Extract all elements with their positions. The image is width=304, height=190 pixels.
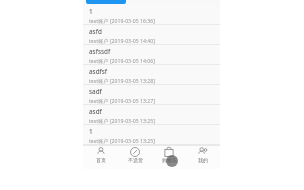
staticText: asdfsf	[89, 67, 108, 76]
staticText: sadf	[89, 87, 102, 96]
button[interactable]: New messages	[86, 0, 126, 4]
staticText: test账户 [2019-03-05 14:40]	[89, 37, 155, 44]
staticText: 不选货	[128, 157, 143, 163]
button[interactable]: sadf	[83, 85, 220, 104]
staticText: 购物车	[162, 157, 177, 163]
staticText: 首页	[96, 157, 106, 163]
other: Home	[96, 147, 106, 157]
staticText: 1	[89, 7, 93, 16]
button[interactable]: Home	[83, 145, 118, 165]
staticText: test账户 [2019-03-05 13:25]	[89, 137, 155, 144]
staticText: 我的	[198, 157, 208, 163]
button[interactable]: 1	[83, 5, 220, 24]
button[interactable]: 1	[83, 125, 220, 144]
staticText: 1	[89, 127, 93, 136]
other: Cart	[164, 147, 174, 157]
staticText: test账户 [2019-03-05 14:06]	[89, 57, 155, 64]
button[interactable]: Discover	[118, 145, 152, 165]
button[interactable]: asfd	[83, 25, 220, 44]
button[interactable]: asfssdf	[83, 45, 220, 64]
staticText: test账户 [2019-03-05 16:36]	[89, 17, 155, 24]
staticText: asfd	[89, 27, 102, 36]
button[interactable]: Cart	[152, 145, 186, 165]
staticText: asdf	[89, 107, 102, 116]
staticText: test账户 [2019-03-05 13:28]	[89, 77, 155, 84]
button[interactable]: Mine	[186, 145, 220, 165]
other: Mine	[198, 147, 208, 157]
button[interactable]: asdf	[83, 105, 220, 124]
staticText: test账户 [2019-03-05 13:27]	[89, 97, 155, 104]
staticText: test账户 [2019-03-05 13:25]	[89, 117, 155, 124]
other: Discover	[130, 147, 140, 157]
button[interactable]: asdfsf	[83, 65, 220, 84]
staticText: asfssdf	[89, 47, 111, 56]
